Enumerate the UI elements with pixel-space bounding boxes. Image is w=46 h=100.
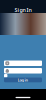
staticText: Login (17, 77, 28, 82)
button[interactable]: Login (4, 77, 42, 82)
staticText: Sign In (14, 6, 31, 14)
